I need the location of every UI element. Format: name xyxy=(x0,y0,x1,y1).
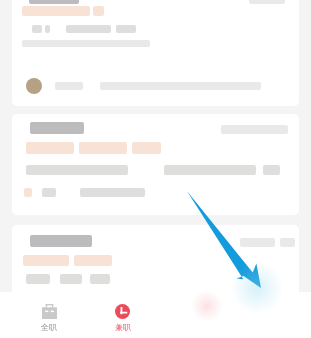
staticText: 兼职 xyxy=(115,322,131,332)
button[interactable] xyxy=(12,225,299,293)
button[interactable] xyxy=(12,114,299,215)
button[interactable] xyxy=(12,0,299,106)
button[interactable]: 全职 xyxy=(12,292,86,338)
staticText: 全职 xyxy=(41,322,57,332)
button[interactable]: 兼职 xyxy=(86,292,159,338)
